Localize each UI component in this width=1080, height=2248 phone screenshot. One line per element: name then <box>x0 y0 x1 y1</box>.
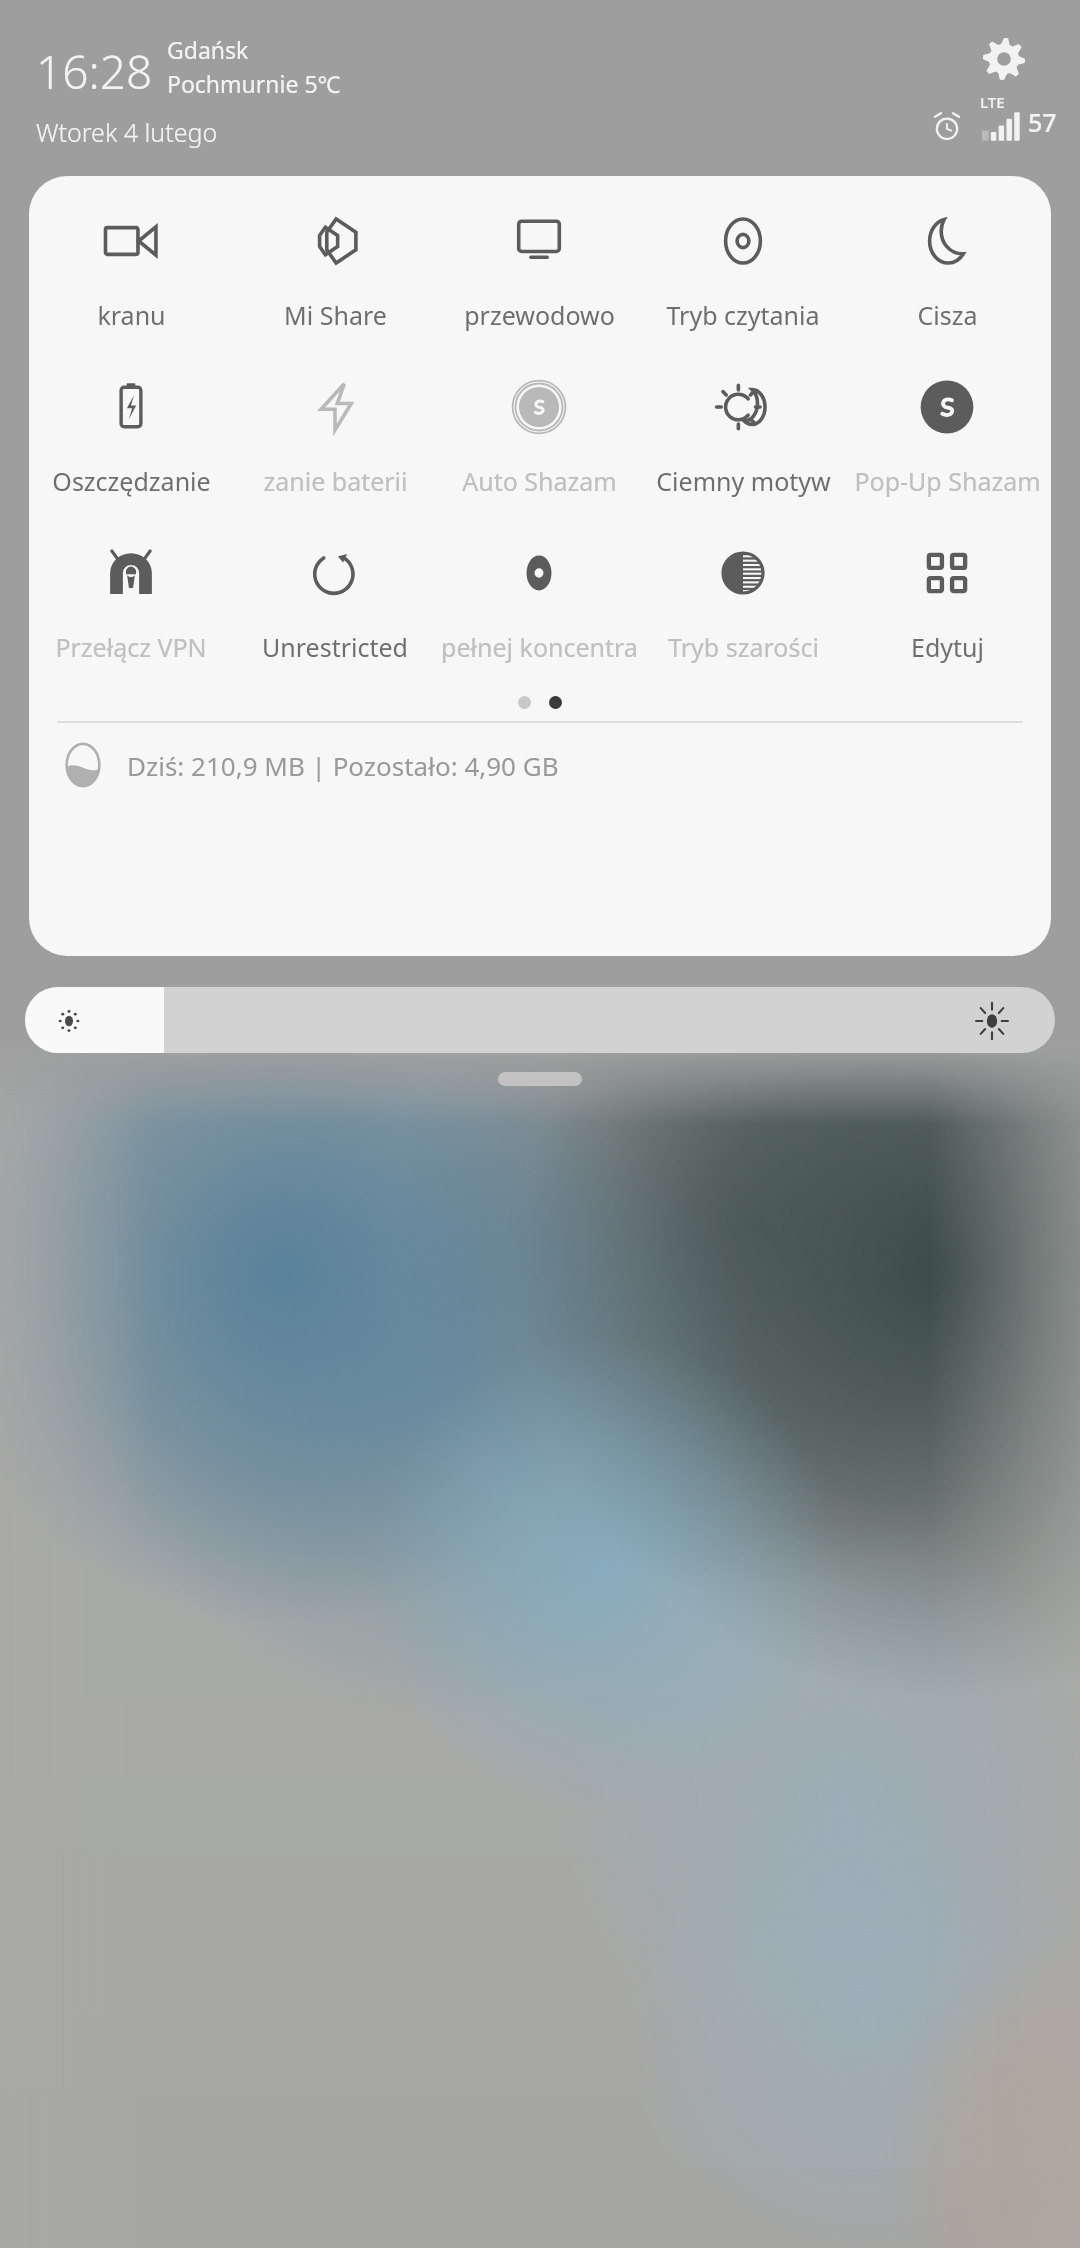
staticText: Pochmurnie 5℃ <box>167 68 341 99</box>
staticText: Przełącz VPN <box>55 630 207 664</box>
button[interactable]: Expand shade <box>498 1072 582 1086</box>
staticText: Dziś: 210,9 MB | Pozostało: 4,90 GB <box>127 748 559 783</box>
button[interactable]: Brightness <box>25 987 1055 1053</box>
staticText: Ciemny motyw <box>656 464 831 498</box>
button[interactable]: Cisza <box>845 190 1049 350</box>
staticText: Mi Share <box>284 298 387 332</box>
button[interactable]: Edytuj <box>845 522 1049 682</box>
button[interactable]: Tryb szarości <box>641 522 845 682</box>
button[interactable]: Settings <box>973 28 1035 90</box>
button[interactable]: Ciemny motyw <box>641 356 845 516</box>
staticText: Wtorek 4 lutego <box>36 115 218 149</box>
staticText: Auto Shazam <box>462 464 617 498</box>
staticText: Oszczędzanie <box>52 464 211 498</box>
staticText: kranu <box>97 298 166 332</box>
button[interactable]: zanie baterii <box>233 356 437 516</box>
button[interactable]: Pop-Up Shazam <box>845 356 1049 516</box>
staticText: 57 <box>1028 105 1057 139</box>
button[interactable]: pełnej koncentra <box>437 522 641 682</box>
staticText: Tryb szarości <box>668 630 819 664</box>
staticText: Unrestricted <box>262 630 408 664</box>
button[interactable]: przewodowo <box>437 190 641 350</box>
staticText: Edytuj <box>911 630 984 664</box>
button[interactable]: Tryb czytania <box>641 190 845 350</box>
staticText: Pop-Up Shazam <box>854 464 1041 498</box>
staticText: przewodowo <box>464 298 615 332</box>
button[interactable]: kranu <box>29 190 233 350</box>
staticText: 16:28 <box>36 40 153 103</box>
button[interactable]: Dziś: 210,9 MB | Pozostało: 4,90 GB <box>29 723 1051 807</box>
staticText: Gdańsk <box>167 34 249 65</box>
staticText: Cisza <box>917 298 978 332</box>
button[interactable]: Oszczędzanie <box>29 356 233 516</box>
staticText: Tryb czytania <box>666 298 820 332</box>
button[interactable]: Mi Share <box>233 190 437 350</box>
staticText: zanie baterii <box>263 464 408 498</box>
staticText: LTE <box>980 92 1005 112</box>
button[interactable]: Przełącz VPN <box>29 522 233 682</box>
button[interactable]: Unrestricted <box>233 522 437 682</box>
staticText: pełnej koncentra <box>441 630 638 664</box>
button[interactable]: Auto Shazam <box>437 356 641 516</box>
